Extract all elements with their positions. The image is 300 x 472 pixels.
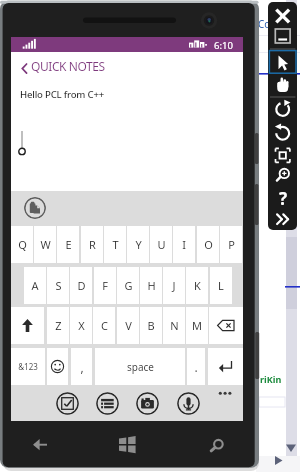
button[interactable]: Enter xyxy=(208,348,243,385)
button[interactable]: K xyxy=(186,267,208,304)
staticText: Y xyxy=(135,237,142,252)
staticText: D xyxy=(77,278,86,293)
button[interactable]: I xyxy=(173,226,195,263)
button[interactable]: Search xyxy=(166,421,243,465)
button[interactable]: C xyxy=(93,307,115,344)
button[interactable]: W xyxy=(34,226,56,263)
staticText: 6:10 xyxy=(214,39,234,52)
button[interactable]: E xyxy=(57,226,79,263)
staticText: M xyxy=(192,318,202,333)
staticText: I xyxy=(182,237,186,252)
button[interactable]: L xyxy=(210,267,232,304)
staticText: , xyxy=(80,359,84,375)
staticText: Co xyxy=(258,17,271,31)
button[interactable]: Back xyxy=(11,421,89,465)
button[interactable]: Paste xyxy=(24,197,46,219)
button[interactable]: J xyxy=(163,267,185,304)
staticText: Z xyxy=(55,318,62,333)
button[interactable]: . xyxy=(187,348,205,385)
staticText: P xyxy=(228,237,235,252)
staticText: O xyxy=(204,237,213,252)
staticText: riKin xyxy=(260,373,282,385)
button[interactable]: A xyxy=(24,267,46,304)
button[interactable]: G xyxy=(117,267,139,304)
staticText: ? xyxy=(279,187,288,210)
button[interactable]: Start xyxy=(89,421,166,465)
staticText: QUICK NOTES xyxy=(31,58,105,74)
button[interactable]: List xyxy=(96,392,119,415)
button[interactable]: O xyxy=(197,226,219,263)
button[interactable]: Voice xyxy=(177,392,200,415)
staticText: C xyxy=(101,318,108,333)
staticText: . xyxy=(194,359,198,375)
staticText: A xyxy=(31,278,39,293)
button[interactable]: Shift xyxy=(11,307,44,344)
button[interactable]: &123 xyxy=(11,348,45,385)
staticText: space xyxy=(127,360,154,374)
button[interactable]: B xyxy=(140,307,162,344)
staticText: S xyxy=(55,278,62,293)
staticText: E xyxy=(65,237,72,252)
button[interactable]: V xyxy=(117,307,139,344)
staticText: J xyxy=(172,278,176,293)
button[interactable]: QUICK NOTES xyxy=(11,52,243,74)
button[interactable]: M xyxy=(186,307,208,344)
staticText: N xyxy=(170,318,179,333)
staticText: U xyxy=(157,237,166,252)
staticText: &123 xyxy=(18,361,38,372)
button[interactable]: X xyxy=(70,307,92,344)
button[interactable]: Emoji xyxy=(47,348,68,385)
button[interactable]: U xyxy=(150,226,172,263)
staticText: Q xyxy=(18,237,27,252)
staticText: L xyxy=(218,278,224,293)
staticText: H xyxy=(147,278,156,293)
staticText: T xyxy=(112,237,119,252)
button[interactable]: S xyxy=(47,267,69,304)
staticText: V xyxy=(125,318,132,333)
button[interactable]: D xyxy=(70,267,92,304)
staticText: R xyxy=(89,237,96,252)
button[interactable]: More options xyxy=(216,388,238,400)
button[interactable]: R xyxy=(81,226,103,263)
button[interactable]: Y xyxy=(127,226,149,263)
button[interactable]: Tasks xyxy=(56,392,79,415)
button[interactable]: Z xyxy=(47,307,69,344)
staticText: W xyxy=(40,237,51,252)
button[interactable]: N xyxy=(163,307,185,344)
staticText: Hello PCL from C++ xyxy=(20,88,104,101)
button[interactable]: P xyxy=(220,226,242,263)
staticText: B xyxy=(147,318,155,333)
staticText: X xyxy=(78,318,85,333)
staticText: F xyxy=(102,278,108,293)
button[interactable]: F xyxy=(94,267,116,304)
button[interactable]: space xyxy=(95,348,185,385)
button[interactable]: Q xyxy=(11,226,33,263)
button[interactable]: Backspace xyxy=(209,307,243,344)
button[interactable]: , xyxy=(71,348,92,385)
button[interactable]: T xyxy=(104,226,126,263)
staticText: G xyxy=(124,278,133,293)
staticText: K xyxy=(194,278,201,293)
button[interactable]: Camera xyxy=(136,392,159,415)
button[interactable]: H xyxy=(140,267,162,304)
